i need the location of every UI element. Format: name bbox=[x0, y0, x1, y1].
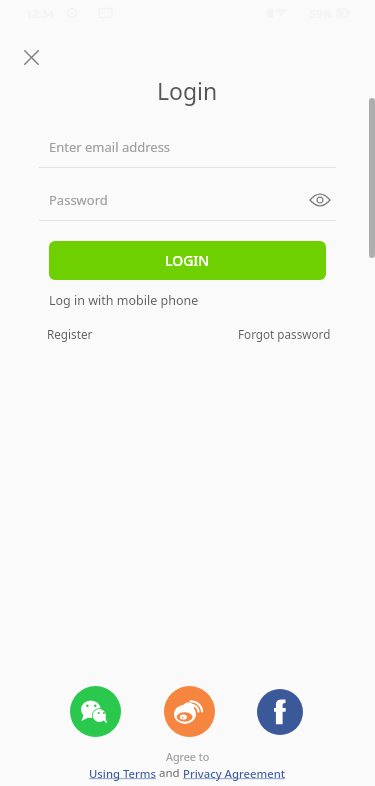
staticText: Register bbox=[47, 326, 93, 342]
button[interactable]: Close bbox=[16, 41, 47, 72]
button[interactable]: Log in with mobile phone bbox=[46, 290, 202, 311]
button[interactable]: Forgot password bbox=[236, 324, 333, 344]
staticText: Privacy Agreement bbox=[183, 766, 286, 781]
staticText: Using Terms bbox=[89, 766, 159, 781]
button[interactable]: Sign in with Facebook bbox=[257, 689, 303, 735]
staticText: Enter email address bbox=[49, 138, 171, 156]
staticText: Log in with mobile phone bbox=[49, 292, 199, 309]
staticText: Login bbox=[157, 75, 218, 106]
staticText: LOGIN bbox=[165, 251, 210, 270]
button[interactable]: Register bbox=[45, 324, 95, 344]
button[interactable]: Using Terms bbox=[89, 766, 159, 781]
staticText: Agree to bbox=[166, 749, 210, 764]
button[interactable]: Sign in with WeChat bbox=[70, 686, 121, 737]
button[interactable]: Sign in with Weibo bbox=[164, 686, 215, 737]
staticText: Password bbox=[49, 191, 108, 209]
button[interactable]: Privacy Agreement bbox=[183, 766, 286, 781]
button[interactable]: LOGIN bbox=[49, 241, 326, 280]
staticText: and bbox=[159, 765, 183, 781]
button[interactable]: Show password bbox=[305, 185, 335, 215]
staticText: Forgot password bbox=[238, 326, 331, 342]
